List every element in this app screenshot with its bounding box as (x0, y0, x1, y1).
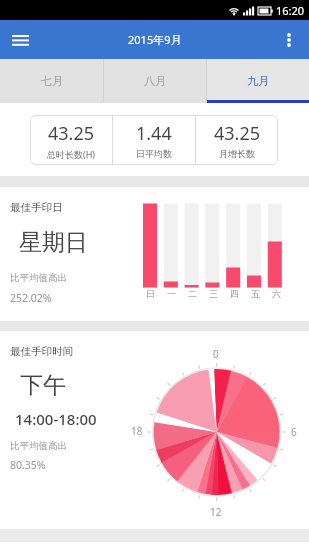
staticText: 1.44 (136, 121, 172, 146)
button[interactable] (277, 28, 301, 52)
staticText: 16:20 (276, 3, 305, 18)
staticText: 2015年9月 (128, 32, 182, 47)
staticText: 四 (230, 288, 239, 299)
button[interactable]: 九月 (207, 59, 309, 103)
staticText: 43.25 (214, 121, 261, 146)
staticText: 日平均数 (136, 148, 172, 159)
staticText: 18 (131, 424, 143, 438)
staticText: 最佳手印时间 (10, 345, 73, 358)
button[interactable]: 43.25 (30, 115, 112, 165)
staticText: 六 (272, 288, 281, 299)
staticText: 252.02% (10, 291, 52, 305)
button[interactable]: 43.25 (196, 115, 278, 165)
staticText: 月增长数 (219, 148, 255, 159)
staticText: 三 (209, 288, 218, 299)
staticText: 九月 (247, 74, 269, 88)
staticText: 星期日 (19, 228, 88, 257)
staticText: 12 (210, 505, 222, 519)
staticText: 一 (167, 288, 176, 299)
button[interactable] (6, 26, 34, 54)
staticText: 七月 (41, 74, 63, 88)
staticText: 43.25 (48, 121, 95, 146)
staticText: 80.35% (10, 458, 46, 472)
staticText: 日 (146, 288, 155, 299)
staticText: 最佳手印日 (10, 201, 63, 214)
staticText: 八月 (144, 74, 166, 88)
staticText: 总时长数(H) (47, 148, 96, 160)
staticText: 五 (251, 288, 260, 299)
staticText: 6 (291, 425, 297, 439)
button[interactable]: 1.44 (113, 115, 195, 165)
staticText: 14:00-18:00 (15, 409, 97, 429)
staticText: 二 (188, 288, 197, 299)
button[interactable]: 八月 (104, 59, 206, 103)
staticText: 下午 (20, 371, 66, 400)
staticText: 0 (213, 347, 219, 361)
staticText: 比平均值高出 (10, 440, 67, 452)
staticText: 比平均值高出 (10, 272, 67, 284)
button[interactable]: 七月 (0, 59, 103, 103)
